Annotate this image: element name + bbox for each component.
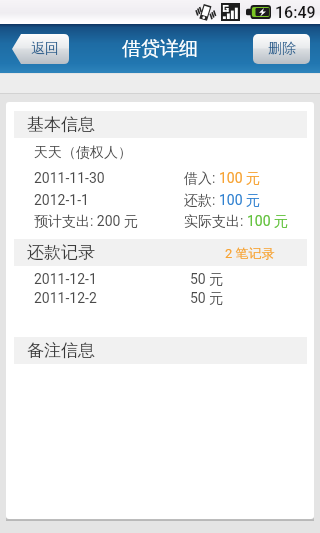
staticText: 16:49: [275, 3, 316, 22]
staticText: 50 元: [190, 271, 224, 289]
staticText: 100 元: [219, 192, 261, 210]
staticText: 预计支出: 200 元: [34, 213, 138, 231]
staticText: 借贷详细: [122, 37, 198, 61]
staticText: 2011-12-2: [34, 290, 97, 306]
staticText: 100 元: [219, 170, 261, 188]
staticText: 2011-11-30: [34, 170, 105, 186]
staticText: 还款:: [184, 192, 219, 210]
staticText: 天天（债权人）: [34, 144, 132, 162]
staticText: 2012-1-1: [34, 192, 89, 208]
staticText: 100 元: [247, 213, 289, 231]
staticText: 备注信息: [27, 340, 95, 361]
button[interactable]: 备注信息: [14, 337, 307, 364]
button[interactable]: 返回: [12, 34, 69, 64]
button[interactable]: 还款记录: [14, 239, 307, 266]
staticText: 2011-12-1: [34, 271, 97, 287]
staticText: 删除: [268, 40, 296, 58]
staticText: 实际支出:: [184, 213, 247, 231]
staticText: 还款记录: [27, 242, 95, 263]
staticText: 2 笔记录: [225, 245, 275, 261]
button[interactable]: 基本信息: [14, 111, 307, 138]
staticText: 基本信息: [27, 114, 95, 135]
staticText: 50 元: [190, 290, 224, 308]
staticText: 返回: [31, 40, 59, 58]
staticText: 借入:: [184, 170, 219, 188]
button[interactable]: 删除: [253, 34, 310, 64]
